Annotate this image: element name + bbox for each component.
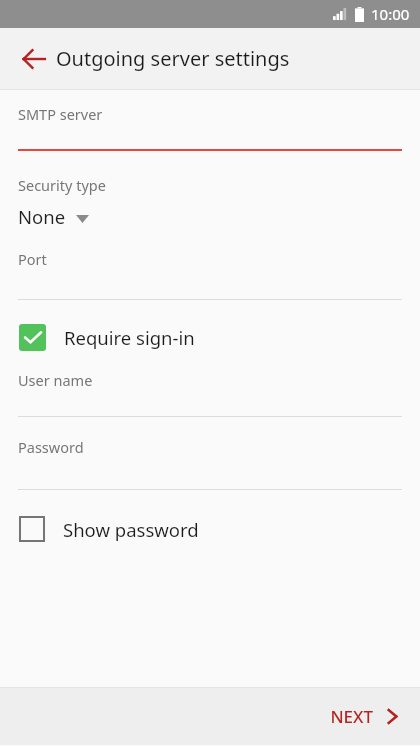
staticText: SMTP server [18,104,103,124]
staticText: Show password [63,517,199,542]
button[interactable]: Back [14,39,54,79]
button[interactable]: None [0,202,420,231]
staticText: NEXT [330,705,373,728]
staticText: User name [18,370,93,390]
staticText: Port [18,249,47,269]
staticText: Security type [18,175,106,195]
staticText: 10:00 [371,4,410,24]
button[interactable]: Show password [0,513,420,545]
button[interactable]: Require sign-in [0,321,420,354]
button[interactable]: NEXT [308,695,420,738]
staticText: Require sign-in [64,325,195,350]
staticText: Password [18,437,84,457]
staticText: Outgoing server settings [56,45,290,72]
staticText: None [18,204,66,229]
